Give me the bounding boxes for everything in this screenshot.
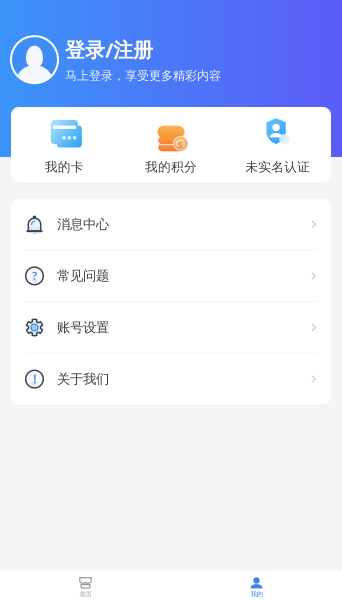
staticText: 我的卡 [45,159,84,175]
button[interactable]: 未实名认证 [224,107,331,182]
staticText: 首页 [79,590,91,598]
button[interactable]: 登录/注册 [0,0,342,83]
staticText: 关于我们 [57,371,109,387]
staticText: 马上登录，享受更多精彩内容 [65,68,221,83]
staticText: 我的积分 [145,159,197,175]
staticText: 账号设置 [57,319,109,336]
button[interactable]: 我的卡 [11,107,118,182]
button[interactable]: 首页 [0,571,171,600]
button[interactable]: S [118,107,224,182]
staticText: 我的 [250,590,262,598]
staticText: ? [32,268,37,283]
button[interactable]: 账号设置 [11,302,331,353]
button[interactable]: ? [11,251,331,301]
staticText: 消息中心 [57,216,109,233]
staticText: ! [33,371,36,387]
button[interactable]: 我的 [171,571,342,600]
staticText: 常见问题 [57,267,109,284]
button[interactable]: ! [11,354,331,404]
button[interactable]: 消息中心 [11,199,331,250]
staticText: S [178,139,182,150]
staticText: 未实名认证 [245,159,310,175]
staticText: 登录/注册 [65,36,153,63]
